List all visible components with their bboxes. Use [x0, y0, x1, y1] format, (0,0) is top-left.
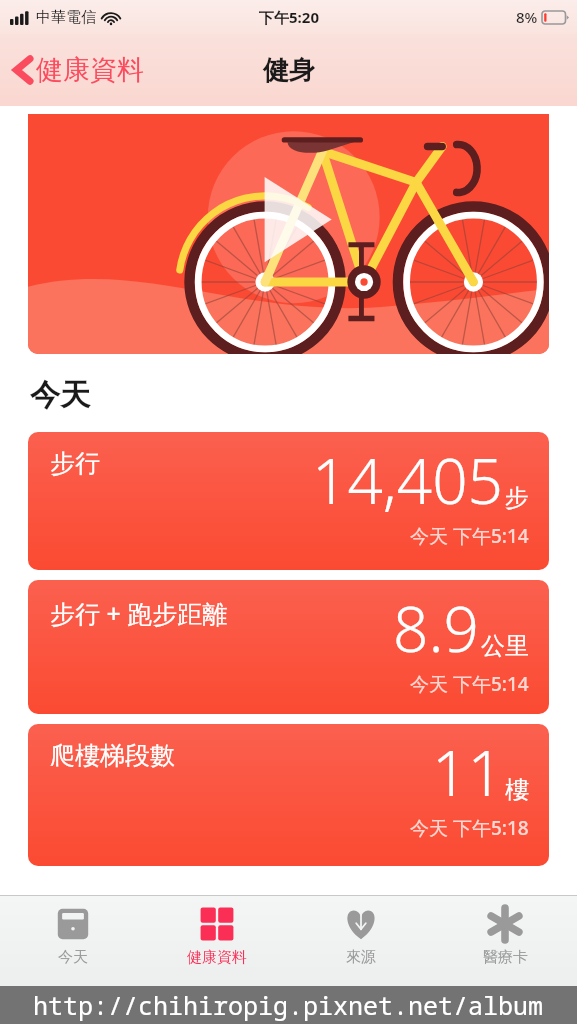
button[interactable]: Play workout video [28, 114, 549, 354]
staticText: 步 [505, 483, 529, 513]
staticText: 來源 [346, 948, 376, 967]
button[interactable]: 步行 [28, 432, 549, 570]
staticText: 樓 [505, 775, 529, 805]
staticText: http://chihiropig.pixnet.net/album [33, 988, 544, 1022]
button[interactable]: Health Data [145, 896, 289, 986]
button[interactable]: 爬樓梯段數 [28, 724, 549, 866]
button[interactable]: Medical ID [433, 896, 577, 986]
staticText: 健身 [263, 54, 315, 87]
button[interactable]: 步行 + 跑步距離 [28, 580, 549, 714]
staticText: 步行 + 跑步距離 [50, 596, 228, 630]
staticText: 健康資料 [36, 53, 144, 87]
staticText: 爬樓梯段數 [50, 740, 175, 771]
staticText: 醫療卡 [483, 948, 528, 967]
staticText: 8.9 [393, 586, 479, 670]
staticText: 健康資料 [187, 948, 247, 967]
button[interactable]: Sources [289, 896, 433, 986]
staticText: 公里 [481, 631, 529, 661]
staticText: 今天 下午5:14 [410, 671, 529, 697]
staticText: 下午5:20 [259, 7, 319, 27]
staticText: 11 [432, 730, 503, 814]
staticText: 8% [516, 7, 538, 27]
staticText: 今天 [58, 948, 88, 967]
button[interactable]: Today [0, 896, 145, 986]
staticText: 14,405 [312, 438, 503, 522]
staticText: 今天 [30, 376, 90, 414]
staticText: 今天 下午5:14 [410, 523, 529, 549]
staticText: 中華電信 [36, 8, 96, 27]
staticText: 步行 [50, 448, 100, 479]
button[interactable]: 健康資料 [12, 53, 144, 87]
staticText: 今天 下午5:18 [410, 815, 529, 841]
